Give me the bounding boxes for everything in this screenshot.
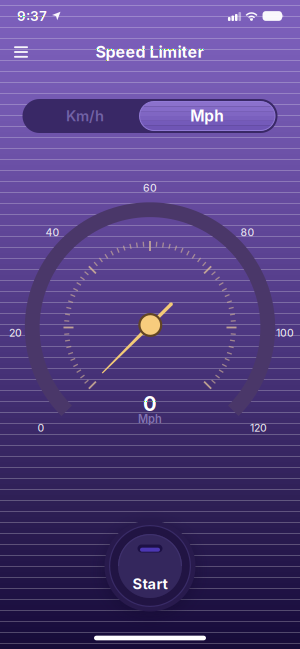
staticText: 40 <box>45 226 59 239</box>
button[interactable]: Km/h <box>22 99 147 133</box>
button[interactable]: Mph <box>139 101 275 130</box>
staticText: 9:37 <box>17 8 47 24</box>
staticText: 100 <box>276 327 294 339</box>
staticText: 0 <box>37 422 44 434</box>
staticText: 80 <box>240 226 254 239</box>
button[interactable]: Menu <box>7 38 35 66</box>
staticText: Mph <box>190 107 224 125</box>
staticText: 0 <box>143 391 157 416</box>
button[interactable]: Start <box>103 519 197 613</box>
staticText: Start <box>132 575 167 593</box>
staticText: Km/h <box>66 107 104 125</box>
staticText: Mph <box>138 412 162 426</box>
staticText: Speed Limiter <box>95 42 204 62</box>
staticText: 20 <box>9 327 22 339</box>
staticText: 60 <box>143 182 157 194</box>
staticText: 120 <box>250 422 267 434</box>
